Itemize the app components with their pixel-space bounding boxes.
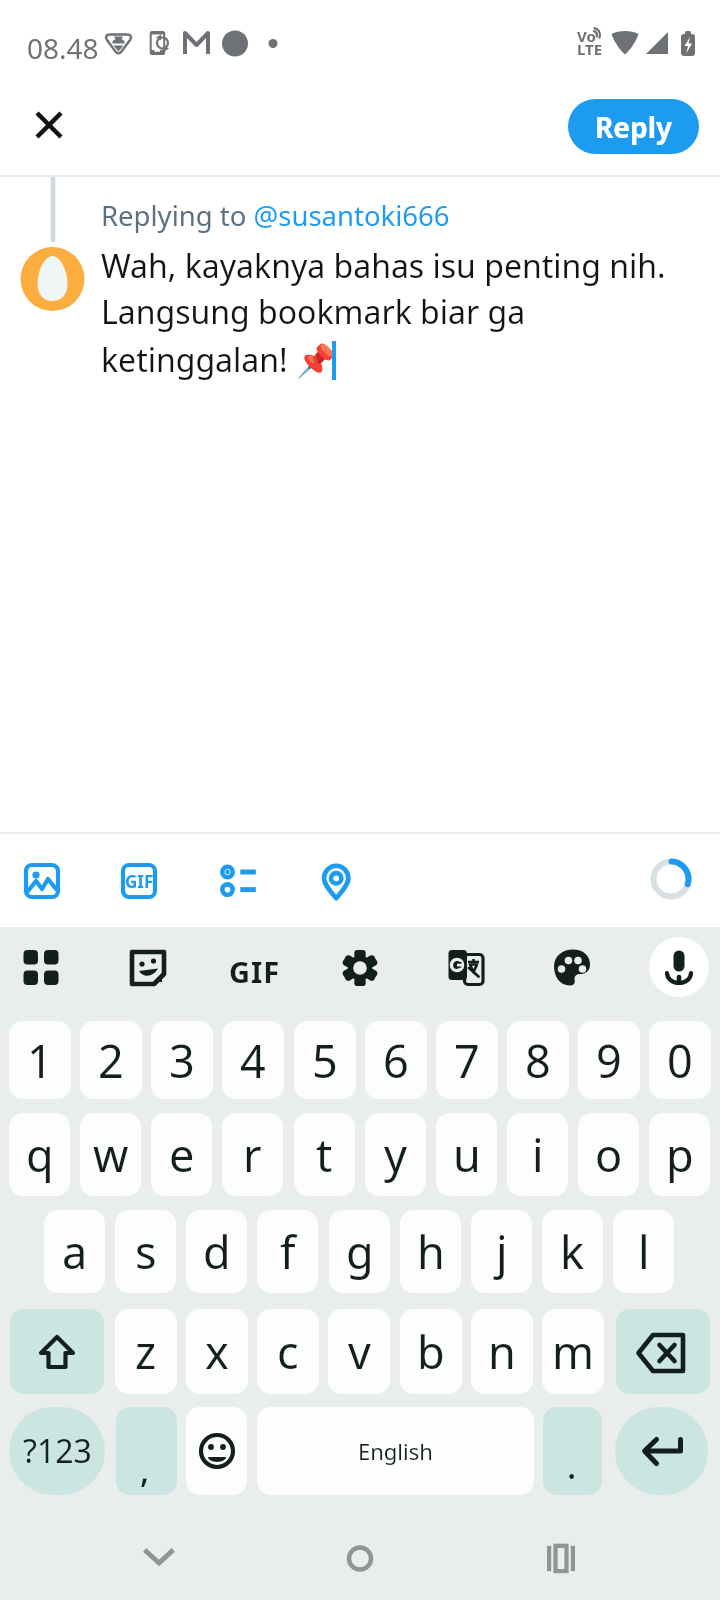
staticText: ?123: [23, 1429, 92, 1473]
staticText: Wah, kayaknya bahas isu penting nih. Lan…: [101, 244, 701, 381]
button[interactable]: Recents: [528, 1524, 594, 1590]
button[interactable]: g: [329, 1210, 390, 1293]
button[interactable]: Themes: [538, 934, 604, 1000]
staticText: t: [316, 1124, 333, 1185]
button[interactable]: d: [186, 1210, 247, 1293]
button[interactable]: z: [115, 1309, 177, 1394]
staticText: b: [417, 1321, 445, 1382]
staticText: 8: [525, 1030, 551, 1091]
staticText: f: [280, 1221, 296, 1282]
button[interactable]: l: [613, 1210, 674, 1293]
button[interactable]: j: [471, 1210, 532, 1293]
button[interactable]: ?123: [9, 1407, 105, 1495]
staticText: g: [346, 1221, 374, 1282]
button[interactable]: c: [257, 1309, 319, 1394]
staticText: o: [595, 1124, 623, 1185]
button[interactable]: 6: [365, 1021, 427, 1099]
staticText: 6: [383, 1030, 409, 1091]
button[interactable]: Apps: [8, 934, 74, 1000]
staticText: .: [567, 1443, 577, 1489]
staticText: 7: [454, 1030, 480, 1091]
staticText: d: [203, 1221, 231, 1282]
staticText: GIF: [229, 952, 281, 991]
staticText: k: [560, 1221, 585, 1282]
staticText: m: [552, 1321, 595, 1382]
button[interactable]: 0: [649, 1021, 711, 1099]
button[interactable]: GIF: [220, 934, 286, 1000]
staticText: w: [93, 1124, 129, 1185]
button[interactable]: b: [400, 1309, 462, 1394]
button[interactable]: 1: [9, 1021, 71, 1099]
button[interactable]: Add poll: [204, 852, 270, 918]
button[interactable]: Comma: [116, 1407, 177, 1495]
staticText: 2: [98, 1030, 124, 1091]
button[interactable]: Voice input: [645, 934, 711, 1000]
button[interactable]: 5: [294, 1021, 356, 1099]
button[interactable]: o: [578, 1113, 639, 1196]
button[interactable]: 8: [507, 1021, 569, 1099]
button[interactable]: 2: [80, 1021, 142, 1099]
staticText: a: [62, 1221, 88, 1282]
button[interactable]: r: [222, 1113, 283, 1196]
staticText: r: [243, 1124, 262, 1185]
staticText: Vo: [577, 26, 596, 46]
staticText: l: [638, 1221, 650, 1282]
button[interactable]: Back: [126, 1524, 192, 1590]
staticText: 4: [240, 1030, 266, 1091]
button[interactable]: q: [9, 1113, 70, 1196]
button[interactable]: Replying to @susantoki666: [101, 197, 701, 381]
button[interactable]: w: [80, 1113, 141, 1196]
button[interactable]: Stickers: [114, 934, 180, 1000]
button[interactable]: h: [400, 1210, 461, 1293]
button[interactable]: e: [151, 1113, 212, 1196]
button[interactable]: Emoji: [186, 1407, 247, 1495]
staticText: LTE: [577, 39, 603, 59]
staticText: p: [666, 1124, 694, 1185]
staticText: 1: [27, 1030, 53, 1091]
button[interactable]: v: [328, 1309, 390, 1394]
button[interactable]: Enter: [615, 1407, 708, 1495]
button[interactable]: i: [507, 1113, 568, 1196]
button[interactable]: Backspace: [616, 1309, 710, 1394]
button[interactable]: Home: [327, 1524, 393, 1590]
button[interactable]: Add GIF: [107, 852, 173, 918]
button[interactable]: Period: [543, 1407, 602, 1495]
button[interactable]: Close: [19, 95, 79, 155]
button[interactable]: p: [649, 1113, 710, 1196]
button[interactable]: t: [294, 1113, 355, 1196]
button[interactable]: u: [436, 1113, 497, 1196]
staticText: Reply: [595, 108, 673, 146]
staticText: e: [169, 1124, 195, 1185]
button[interactable]: 3: [151, 1021, 213, 1099]
staticText: v: [348, 1321, 371, 1382]
staticText: n: [488, 1321, 516, 1382]
button[interactable]: a: [44, 1210, 105, 1293]
staticText: GIF: [125, 870, 154, 893]
button[interactable]: m: [542, 1309, 604, 1394]
staticText: z: [135, 1321, 157, 1382]
button[interactable]: Add photo: [8, 852, 74, 918]
button[interactable]: Reply: [568, 99, 699, 154]
button[interactable]: English: [257, 1407, 534, 1495]
button[interactable]: Shift: [10, 1309, 104, 1394]
button[interactable]: x: [186, 1309, 248, 1394]
button[interactable]: s: [115, 1210, 176, 1293]
staticText: x: [205, 1321, 229, 1382]
staticText: Replying to @susantoki666: [101, 197, 450, 234]
button[interactable]: 9: [578, 1021, 640, 1099]
button[interactable]: f: [257, 1210, 318, 1293]
button[interactable]: Settings: [326, 934, 392, 1000]
button[interactable]: y: [365, 1113, 426, 1196]
button[interactable]: Translate: [432, 934, 498, 1000]
button[interactable]: 4: [222, 1021, 284, 1099]
button[interactable]: n: [471, 1309, 533, 1394]
staticText: s: [135, 1221, 157, 1282]
staticText: j: [496, 1221, 508, 1282]
staticText: 08.48: [27, 29, 99, 67]
staticText: English: [358, 1436, 433, 1466]
staticText: y: [384, 1124, 407, 1185]
button[interactable]: 7: [436, 1021, 498, 1099]
staticText: 9: [596, 1030, 622, 1091]
button[interactable]: k: [542, 1210, 603, 1293]
button[interactable]: Add location: [303, 852, 369, 918]
